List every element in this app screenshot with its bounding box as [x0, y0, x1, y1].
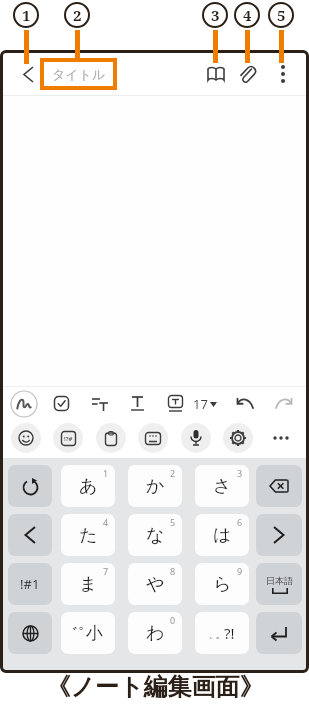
staticText: 17: [193, 395, 208, 413]
staticText: 《ノート編集画面》: [46, 672, 264, 702]
staticText: 0: [170, 614, 176, 626]
button[interactable]: さ: [195, 465, 249, 507]
staticText: 4: [243, 5, 252, 25]
button[interactable]: [8, 387, 40, 420]
button[interactable]: 、。: [195, 612, 249, 654]
staticText: や: [146, 573, 165, 596]
staticText: な: [146, 524, 165, 547]
staticText: は: [213, 524, 232, 547]
button[interactable]: ま: [61, 563, 115, 605]
staticText: 9: [237, 565, 243, 577]
button[interactable]: か: [128, 465, 182, 507]
button[interactable]: [256, 514, 302, 556]
staticText: 、。: [210, 628, 224, 641]
staticText: あ: [79, 475, 98, 498]
button[interactable]: [267, 387, 299, 420]
button[interactable]: [223, 423, 253, 453]
staticText: わ: [146, 622, 165, 645]
button[interactable]: !?#: [53, 423, 83, 453]
staticText: か: [146, 475, 165, 498]
button[interactable]: [8, 465, 52, 507]
staticText: 7: [103, 565, 109, 577]
staticText: ?!: [224, 623, 235, 643]
staticText: 2: [170, 467, 176, 479]
button[interactable]: 17: [189, 387, 221, 420]
staticText: 5: [277, 5, 286, 25]
button[interactable]: あ: [61, 465, 115, 507]
button[interactable]: [121, 387, 153, 420]
button[interactable]: 日本語: [256, 563, 302, 605]
staticText: 小: [86, 623, 103, 644]
staticText: 5: [170, 516, 176, 528]
staticText: 6: [237, 516, 243, 528]
staticText: 1: [22, 5, 31, 25]
button[interactable]: [8, 514, 52, 556]
button[interactable]: [256, 465, 302, 507]
button[interactable]: [256, 612, 302, 654]
button[interactable]: [229, 387, 261, 420]
button[interactable]: [200, 58, 232, 90]
button[interactable]: [181, 423, 211, 453]
button[interactable]: [45, 387, 77, 420]
button[interactable]: [266, 423, 296, 453]
button[interactable]: [11, 423, 41, 453]
button[interactable]: は: [195, 514, 249, 556]
button[interactable]: [12, 58, 44, 90]
staticText: ま: [79, 573, 98, 596]
button[interactable]: [8, 612, 52, 654]
staticText: !?#: [64, 435, 73, 443]
staticText: 8: [170, 565, 176, 577]
button[interactable]: [159, 387, 191, 420]
button[interactable]: [267, 58, 299, 90]
button[interactable]: た: [61, 514, 115, 556]
staticText: ﾞﾟ: [73, 626, 86, 641]
button[interactable]: ﾞﾟ: [61, 612, 115, 654]
staticText: た: [79, 524, 98, 547]
staticText: さ: [213, 475, 232, 498]
staticText: ら: [213, 573, 232, 596]
button[interactable]: わ: [128, 612, 182, 654]
button[interactable]: !#1: [8, 563, 52, 605]
button[interactable]: [96, 423, 126, 453]
staticText: 2: [73, 5, 82, 25]
button[interactable]: な: [128, 514, 182, 556]
button[interactable]: [138, 423, 168, 453]
button[interactable]: [84, 387, 116, 420]
staticText: 1: [103, 467, 109, 479]
button[interactable]: や: [128, 563, 182, 605]
button[interactable]: ら: [195, 563, 249, 605]
button[interactable]: [231, 58, 263, 90]
staticText: 日本語: [266, 575, 293, 586]
staticText: タイトル: [52, 66, 106, 82]
staticText: 4: [103, 516, 109, 528]
button[interactable]: タイトル: [40, 58, 117, 90]
staticText: 3: [237, 467, 243, 479]
staticText: 3: [211, 5, 220, 25]
staticText: !#1: [20, 575, 40, 593]
